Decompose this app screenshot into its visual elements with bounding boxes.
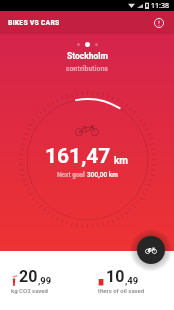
staticText: Next goal	[57, 171, 87, 179]
staticText: 10	[106, 267, 125, 286]
staticText: 300,00 km	[87, 171, 118, 179]
staticText: contributions	[66, 65, 109, 73]
staticText: 11:38	[151, 1, 169, 11]
staticText: Stockholm	[67, 51, 108, 61]
staticText: 161,47	[45, 144, 111, 169]
button[interactable]: Start ride	[137, 236, 165, 264]
staticText: liters of oil saved	[98, 287, 145, 294]
staticText: km	[114, 155, 129, 167]
staticText: 20	[19, 267, 38, 286]
staticText: ,49	[125, 275, 139, 286]
staticText: ,99	[38, 275, 52, 286]
button[interactable]: Info	[149, 13, 169, 33]
staticText: BIKES VS CARS	[8, 18, 60, 27]
button[interactable]: 10	[98, 267, 174, 294]
staticText: kg CO2 saved	[11, 287, 48, 294]
button[interactable]: 20	[11, 267, 87, 294]
